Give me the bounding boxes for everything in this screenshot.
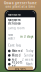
staticText: Living room xyxy=(8,26,24,30)
staticText: Monstera xyxy=(8,13,21,16)
staticText: Repotted xyxy=(12,61,23,68)
staticText: March xyxy=(26,62,33,66)
staticText: Fed xyxy=(12,58,17,61)
staticText: Care log xyxy=(8,44,21,47)
staticText: Sunday xyxy=(24,54,33,57)
staticText: in 3 days xyxy=(20,35,33,38)
staticText: Misted xyxy=(12,54,21,57)
staticText: Log care xyxy=(14,67,26,70)
staticText: 2 weeks xyxy=(22,58,33,61)
staticText: one plant at a time xyxy=(5,5,35,8)
button[interactable]: Misted xyxy=(8,53,33,58)
button[interactable]: Fed xyxy=(8,58,33,62)
staticText: Today xyxy=(26,49,33,53)
button[interactable]: Log care xyxy=(8,66,33,71)
staticText: Watered xyxy=(12,49,23,53)
staticText: Grow a greener home xyxy=(4,1,37,5)
staticText: Next water xyxy=(8,33,15,40)
button[interactable]: Repotted xyxy=(8,62,33,66)
button[interactable]: Watered xyxy=(8,49,33,53)
staticText: Monstera deliciosa xyxy=(8,18,21,25)
